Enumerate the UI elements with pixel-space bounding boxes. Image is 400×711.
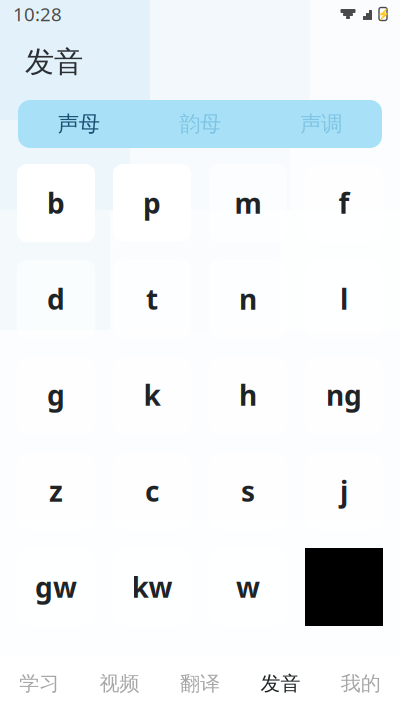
staticText: g [47,376,65,414]
button[interactable]: l [305,260,383,338]
staticText: 视频 [100,671,140,696]
staticText: l [340,280,348,318]
staticText: 声母 [58,111,100,137]
button[interactable]: w [209,548,287,626]
staticText: b [47,184,65,222]
button[interactable]: c [113,452,191,530]
button[interactable]: ng [305,356,383,434]
button[interactable]: 声母 [18,100,139,148]
button[interactable]: b [17,164,95,242]
staticText: f [338,184,349,222]
staticText: z [49,472,63,510]
staticText: d [47,280,65,318]
staticText: c [145,472,159,510]
staticText: 发音 [25,44,83,80]
staticText: ⚡ [376,8,389,20]
button[interactable]: kw [113,548,191,626]
staticText: kw [131,568,172,606]
button[interactable]: 学习 [0,656,79,711]
button[interactable]: d [17,260,95,338]
staticText: s [241,472,255,510]
button[interactable]: 韵母 [139,100,261,148]
button[interactable]: gw [17,548,95,626]
button[interactable]: t [113,260,191,338]
button[interactable]: h [209,356,287,434]
staticText: 声调 [300,111,342,137]
staticText: m [234,184,261,222]
button[interactable]: k [113,356,191,434]
staticText: 10:28 [13,2,62,26]
staticText: j [340,472,348,510]
button[interactable]: p [113,164,191,242]
button[interactable]: s [209,452,287,530]
button[interactable]: j [305,452,383,530]
button[interactable]: 声调 [261,100,382,148]
button[interactable]: 翻译 [160,656,240,711]
button[interactable]: f [305,164,383,242]
staticText: h [239,376,257,414]
staticText: k [143,376,160,414]
button[interactable]: m [209,164,287,242]
staticText: w [236,568,260,606]
button[interactable]: 我的 [321,656,400,711]
button[interactable]: 发音 [240,656,321,711]
button[interactable]: z [17,452,95,530]
staticText: ng [326,376,362,414]
staticText: gw [35,568,77,606]
button[interactable]: 视频 [79,656,160,711]
staticText: 我的 [341,671,381,696]
staticText: 翻译 [180,671,220,696]
staticText: 学习 [19,671,59,696]
staticText: t [146,280,158,318]
staticText: 发音 [260,671,300,696]
button[interactable]: g [17,356,95,434]
staticText: 韵母 [179,111,221,137]
button[interactable]: n [209,260,287,338]
staticText: n [239,280,257,318]
staticText: p [143,184,161,222]
